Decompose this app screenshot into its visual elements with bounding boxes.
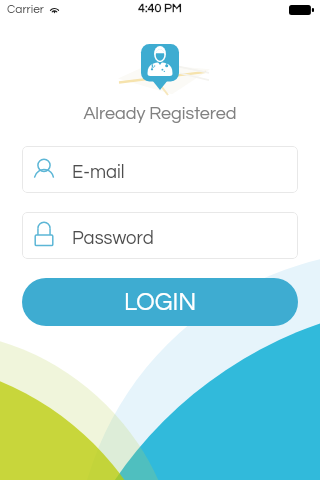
- button[interactable]: LOGIN: [22, 278, 298, 326]
- button[interactable]: Password: [22, 212, 298, 259]
- staticText: LOGIN: [124, 290, 197, 315]
- staticText: Already Registered: [0, 104, 320, 123]
- staticText: E-mail: [72, 163, 125, 182]
- button[interactable]: E-mail: [22, 146, 298, 193]
- staticText: Carrier: [7, 3, 44, 15]
- staticText: 4:40 PM: [0, 2, 320, 15]
- staticText: Password: [72, 229, 154, 248]
